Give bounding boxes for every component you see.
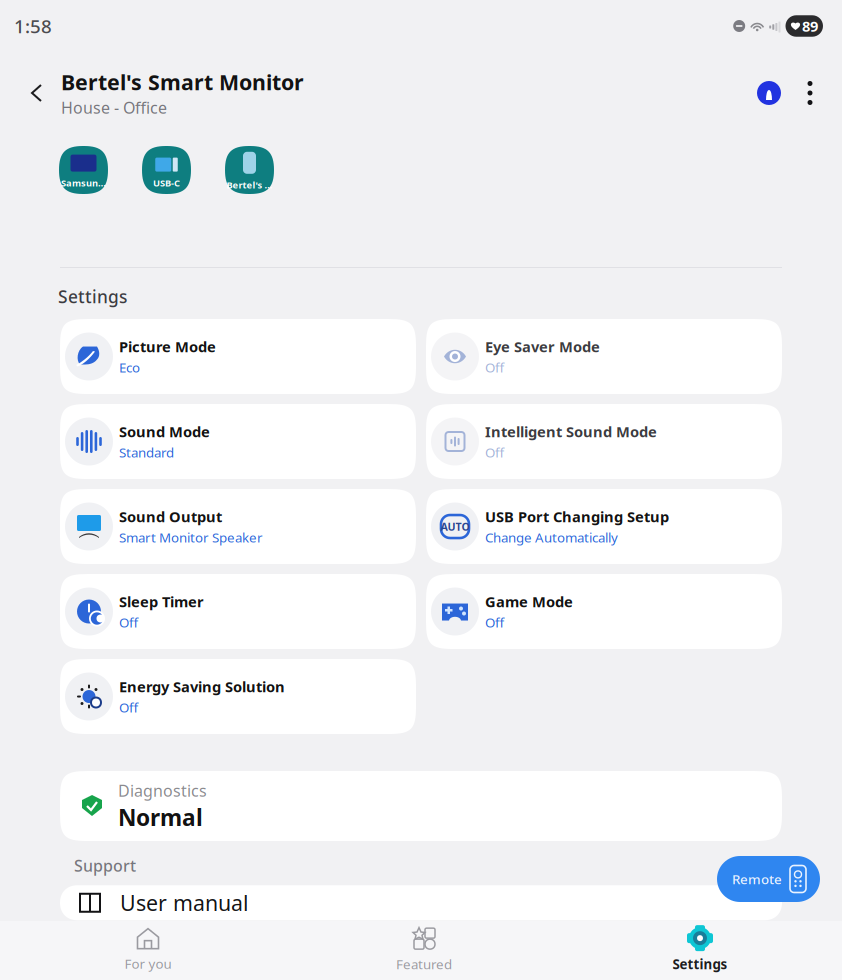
staticText: Standard — [119, 443, 174, 461]
staticText: Eye Saver Mode — [485, 337, 600, 356]
staticText: Off — [485, 613, 504, 631]
button[interactable]: Sleep Timer — [60, 574, 416, 649]
staticText: Intelligent Sound Mode — [485, 422, 657, 441]
button[interactable]: Sound Output — [60, 489, 416, 564]
button[interactable]: Settings — [562, 921, 838, 980]
staticText: Normal — [118, 802, 203, 832]
staticText: House - Office — [61, 97, 167, 118]
button[interactable]: User manual — [60, 885, 782, 920]
button[interactable]: Remote — [717, 856, 820, 902]
button[interactable]: AUTO — [426, 489, 782, 564]
staticText: Sleep Timer — [119, 592, 204, 611]
staticText: Bertel's … — [226, 179, 272, 191]
staticText: Off — [485, 358, 504, 376]
staticText: Bertel's Smart Monitor — [61, 68, 304, 96]
staticText: Off — [119, 613, 138, 631]
staticText: 89 — [802, 16, 818, 36]
staticText: Diagnostics — [118, 780, 207, 801]
button[interactable]: Featured — [286, 921, 562, 980]
staticText: For you — [124, 955, 171, 972]
button[interactable]: Bertel's … — [225, 146, 274, 194]
button[interactable]: Game Mode — [426, 574, 782, 649]
staticText: Sound Output — [119, 507, 222, 526]
staticText: Settings — [58, 285, 127, 308]
staticText: Support — [74, 855, 136, 876]
button[interactable]: USB-C — [142, 146, 191, 194]
button[interactable]: Diagnostics — [60, 771, 782, 841]
button[interactable]: Picture Mode — [60, 319, 416, 394]
button[interactable]: Back — [13, 65, 61, 121]
staticText: Energy Saving Solution — [119, 677, 285, 696]
staticText: Featured — [396, 955, 452, 973]
staticText: Eco — [119, 358, 140, 376]
staticText: Change Automatically — [485, 528, 618, 546]
button[interactable]: Energy Saving Solution — [60, 659, 416, 734]
button[interactable]: Account — [747, 65, 791, 121]
staticText: Sound Mode — [119, 422, 210, 441]
staticText: Settings — [672, 955, 727, 973]
staticText: Game Mode — [485, 592, 573, 611]
staticText: Picture Mode — [119, 337, 216, 356]
staticText: 1:58 — [14, 14, 52, 38]
button[interactable]: Intelligent Sound Mode — [426, 404, 782, 479]
staticText: Samsun… — [61, 177, 106, 189]
button[interactable]: Samsun… — [59, 146, 108, 194]
button[interactable]: Eye Saver Mode — [426, 319, 782, 394]
staticText: Off — [119, 698, 138, 716]
button[interactable]: More options — [791, 65, 829, 121]
staticText: AUTO — [440, 519, 469, 534]
button[interactable]: Sound Mode — [60, 404, 416, 479]
staticText: USB Port Changing Setup — [485, 507, 669, 526]
button[interactable]: For you — [10, 921, 286, 980]
staticText: Off — [485, 443, 504, 461]
staticText: User manual — [120, 889, 249, 917]
staticText: Smart Monitor Speaker — [119, 528, 263, 546]
staticText: Remote — [732, 870, 782, 888]
staticText: USB-C — [153, 177, 180, 189]
